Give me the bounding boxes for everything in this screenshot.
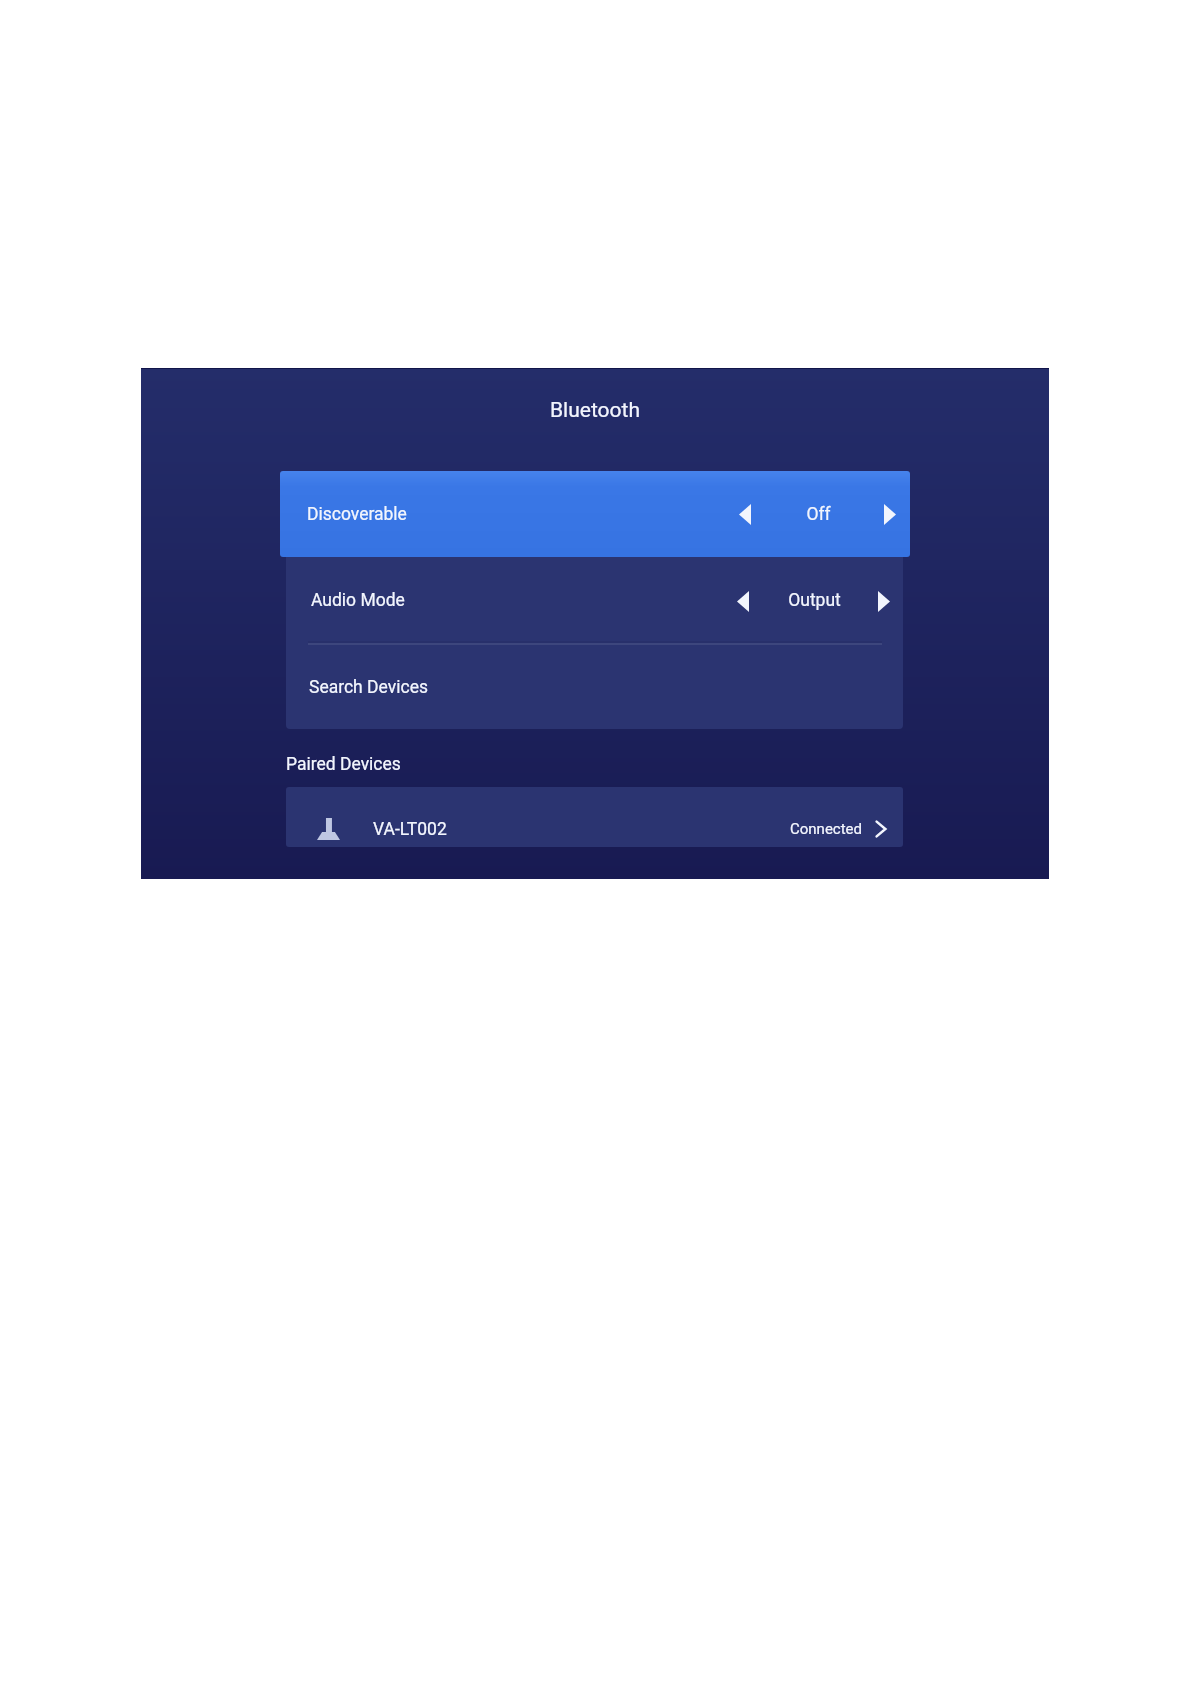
staticText: VA-LT002 (373, 819, 447, 840)
staticText: Paired Devices (286, 754, 401, 775)
button[interactable]: Previous value (739, 497, 751, 531)
button[interactable]: VA-LT002 (286, 787, 903, 847)
staticText: Output (788, 590, 841, 611)
staticText: Bluetooth (550, 398, 640, 423)
button[interactable]: Next value (884, 497, 896, 531)
staticText: Connected (790, 820, 863, 838)
staticText: Off (806, 504, 831, 525)
staticText: Discoverable (307, 504, 407, 525)
button[interactable]: Next value (878, 584, 890, 618)
button[interactable]: Previous value (737, 584, 749, 618)
staticText: Audio Mode (311, 590, 405, 611)
staticText: Search Devices (309, 677, 428, 698)
button[interactable]: Search Devices (286, 645, 903, 729)
button[interactable]: Audio Mode (286, 560, 903, 641)
button[interactable]: Discoverable (280, 471, 910, 557)
